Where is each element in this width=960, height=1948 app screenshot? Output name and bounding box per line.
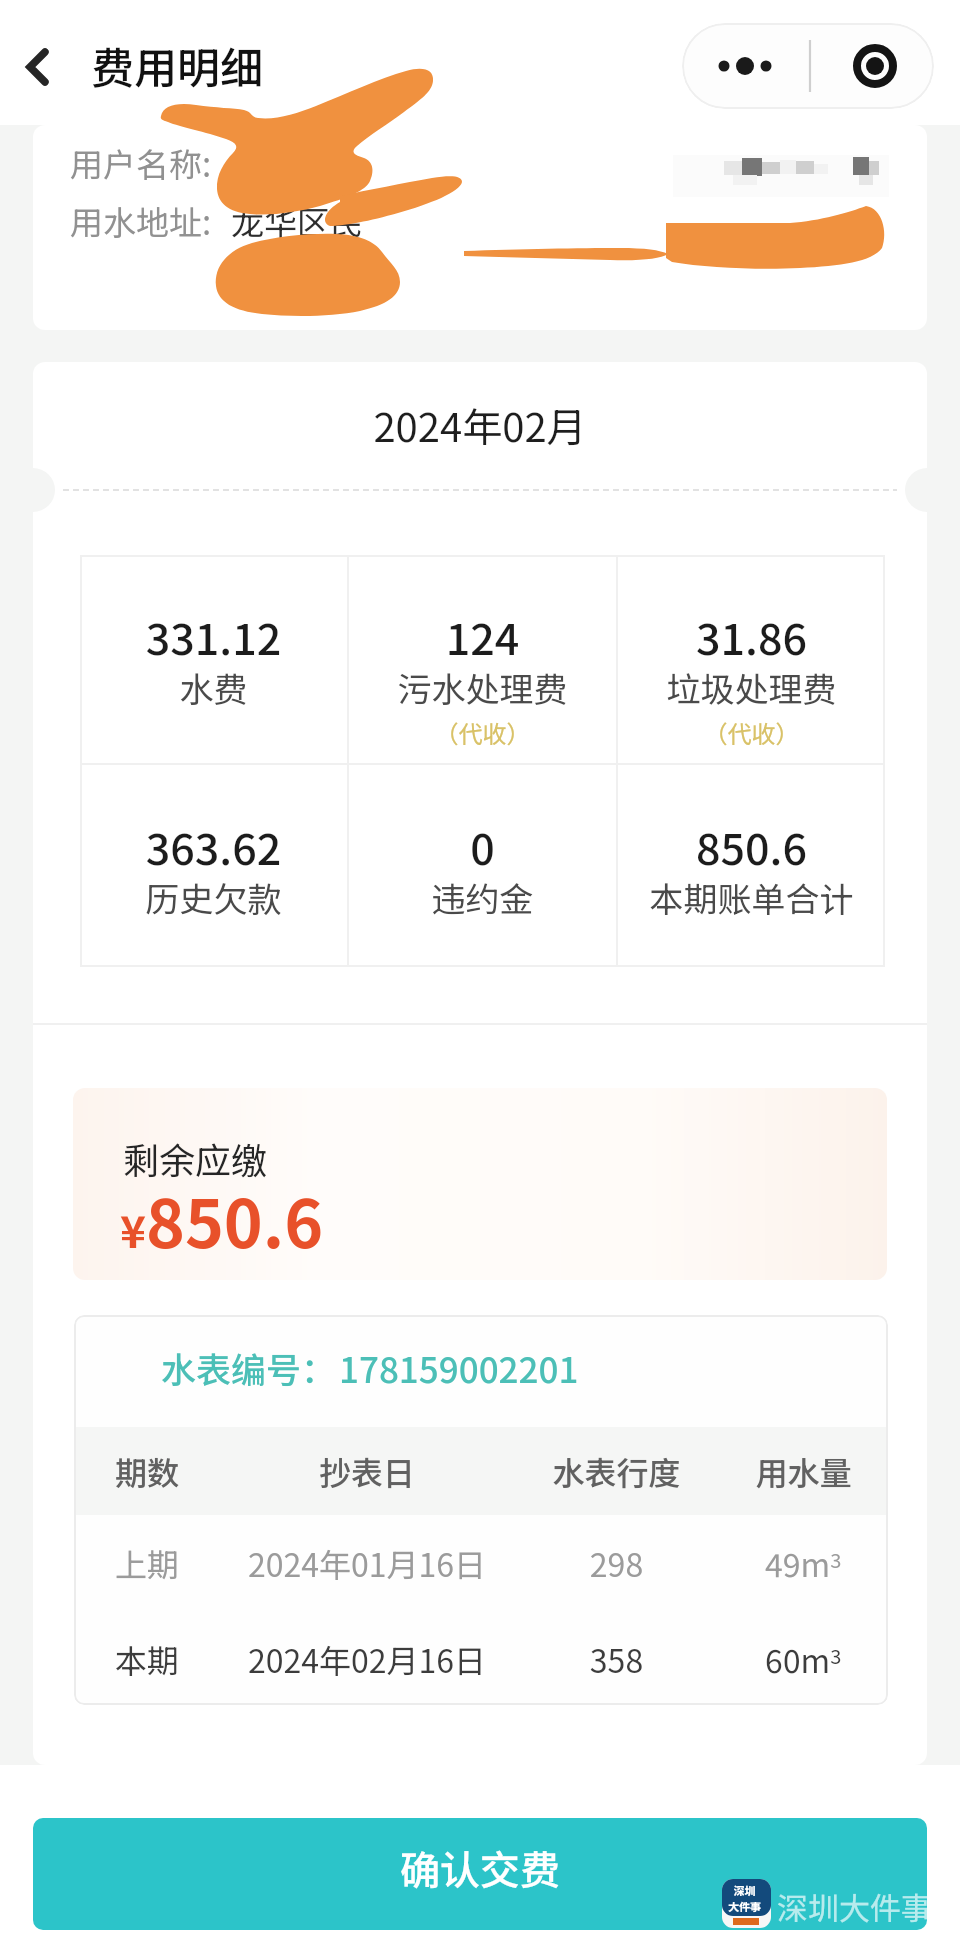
staticText: 上期	[74, 1540, 220, 1586]
staticText: 费用明细	[91, 34, 263, 96]
button[interactable]: More options	[682, 23, 934, 109]
staticText: 363.62	[80, 815, 347, 877]
staticText: 2024年02月16日	[220, 1636, 514, 1682]
staticText: 331.12	[80, 605, 347, 667]
staticText: 深圳 大件事	[728, 1882, 761, 1914]
staticText: 124	[349, 605, 616, 667]
staticText: 水费	[80, 663, 347, 712]
button[interactable]: 用户名称:	[33, 125, 927, 330]
staticText: 2024年01月16日	[220, 1540, 514, 1586]
staticText: 龙华区民	[231, 197, 363, 245]
staticText: ¥850.6	[120, 1171, 324, 1267]
staticText: 水表编号：	[161, 1342, 337, 1393]
staticText: 850.6	[618, 815, 885, 877]
button[interactable]: Back	[0, 25, 72, 97]
staticText: 本期账单合计	[618, 873, 885, 922]
staticText: 用户名称:	[70, 139, 212, 187]
staticText: （代收）	[349, 715, 616, 750]
button[interactable]: 2024年02月	[33, 362, 927, 480]
staticText: 358	[514, 1636, 719, 1682]
staticText: 178159002201	[339, 1342, 579, 1393]
staticText: 用水量	[719, 1448, 888, 1494]
staticText: 298	[514, 1540, 719, 1586]
staticText: 垃圾处理费	[618, 663, 885, 712]
staticText: 历史欠款	[80, 873, 347, 922]
staticText: 60m3	[765, 1636, 842, 1682]
staticText: 本期	[74, 1636, 220, 1682]
staticText: 违约金	[349, 873, 616, 922]
staticText: 剩余应缴	[123, 1132, 268, 1184]
staticText: 期数	[74, 1448, 220, 1494]
button[interactable]: 水表编号：	[74, 1315, 888, 1705]
staticText: （代收）	[618, 715, 885, 750]
staticText: 2024年02月	[33, 396, 927, 454]
button[interactable]: 确认交费	[33, 1818, 927, 1930]
staticText: 用水地址:	[70, 197, 212, 245]
staticText: 抄表日	[220, 1448, 514, 1494]
staticText: 0	[349, 815, 616, 877]
staticText: 污水处理费	[349, 663, 616, 712]
staticText: 水表行度	[514, 1448, 719, 1494]
button[interactable]: 剩余应缴	[73, 1088, 887, 1280]
staticText: 元	[231, 243, 264, 291]
staticText: 确认交费	[400, 1839, 560, 1897]
staticText: 31.86	[618, 605, 885, 667]
staticText: 49m3	[765, 1540, 842, 1586]
staticText: 深圳大件事	[777, 1884, 932, 1929]
